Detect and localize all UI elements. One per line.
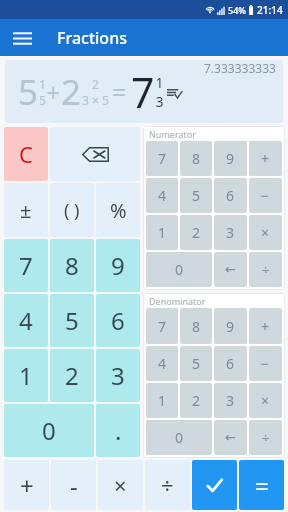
button[interactable]: 7.333333333 <box>5 60 283 123</box>
staticText: ( ) <box>64 198 80 223</box>
staticText: 8 <box>192 317 201 336</box>
button[interactable]: − <box>249 178 282 213</box>
staticText: 1 <box>19 359 33 392</box>
button[interactable]: 1 <box>4 349 48 402</box>
button[interactable]: 4 <box>146 346 178 381</box>
button[interactable]: 2 <box>50 349 94 402</box>
button[interactable]: 8 <box>180 308 212 344</box>
staticText: × <box>114 470 127 500</box>
button[interactable]: 1 <box>146 383 178 418</box>
button[interactable]: 7 <box>146 308 178 344</box>
staticText: Fractions <box>57 27 127 49</box>
button[interactable]: 3 <box>214 215 247 250</box>
staticText: 6 <box>226 186 235 205</box>
staticText: = <box>255 469 269 502</box>
button[interactable]: 3 <box>96 349 140 402</box>
button[interactable]: + <box>249 308 282 344</box>
staticText: + <box>46 75 61 109</box>
staticText: − <box>261 186 270 205</box>
staticText: 0 <box>175 428 184 447</box>
staticText: C <box>19 139 33 169</box>
button[interactable]: 0 <box>146 420 212 455</box>
staticText: 3 <box>155 92 164 111</box>
button[interactable]: 7 <box>146 141 178 176</box>
button[interactable]: 5 <box>180 346 212 381</box>
button[interactable]: ± <box>4 183 48 237</box>
staticText: Denominator <box>149 295 206 307</box>
staticText: 2 <box>192 223 201 242</box>
staticText: ÷ <box>262 261 270 279</box>
staticText: − <box>261 354 270 373</box>
button[interactable]: + <box>4 460 49 510</box>
button[interactable]: 8 <box>180 141 212 176</box>
button[interactable]: 2 <box>180 383 212 418</box>
button[interactable]: 9 <box>96 239 140 292</box>
button[interactable]: × <box>98 460 143 510</box>
staticText: + <box>261 317 270 336</box>
button[interactable]: 6 <box>214 178 247 213</box>
staticText: 5 <box>192 354 201 373</box>
button[interactable]: - <box>51 460 96 510</box>
button[interactable]: 6 <box>96 294 140 347</box>
staticText: ← <box>225 262 236 277</box>
button[interactable]: ← <box>214 420 247 455</box>
button[interactable]: . <box>96 404 140 457</box>
staticText: 7 <box>131 64 155 120</box>
staticText: . <box>115 414 122 447</box>
button[interactable]: 5 <box>50 294 94 347</box>
button[interactable]: C <box>4 127 48 181</box>
staticText: 2 <box>192 391 201 410</box>
staticText: 1 <box>158 391 167 410</box>
staticText: 9 <box>226 149 235 168</box>
staticText: 5 <box>39 92 46 108</box>
staticText: 4 <box>158 186 167 205</box>
staticText: 8 <box>65 249 79 282</box>
button[interactable]: Backspace <box>50 127 140 181</box>
button[interactable]: 0 <box>146 252 212 287</box>
staticText: 5 <box>18 68 39 116</box>
staticText: ← <box>225 430 236 445</box>
staticText: 7 <box>158 149 167 168</box>
button[interactable]: 2 <box>180 215 212 250</box>
staticText: 9 <box>226 317 235 336</box>
staticText: 5 <box>192 186 201 205</box>
button[interactable]: ÷ <box>145 460 190 510</box>
button[interactable]: Confirm <box>192 460 237 510</box>
button[interactable]: 3 <box>214 383 247 418</box>
button[interactable]: 5 <box>180 178 212 213</box>
button[interactable]: + <box>249 141 282 176</box>
staticText: = <box>112 75 127 109</box>
staticText: 7 <box>158 317 167 336</box>
button[interactable]: 1 <box>146 215 178 250</box>
button[interactable]: 9 <box>214 308 247 344</box>
button[interactable]: ← <box>214 252 247 287</box>
staticText: 2 <box>65 359 79 392</box>
button[interactable]: ( ) <box>50 183 94 237</box>
button[interactable]: = <box>239 460 284 510</box>
button[interactable]: 6 <box>214 346 247 381</box>
staticText: + <box>20 469 34 502</box>
button[interactable]: × <box>249 215 282 250</box>
staticText: 6 <box>226 354 235 373</box>
staticText: 0 <box>42 414 56 447</box>
staticText: 0 <box>175 260 184 279</box>
button[interactable]: ÷ <box>249 252 282 287</box>
button[interactable]: 8 <box>50 239 94 292</box>
staticText: 4 <box>158 354 167 373</box>
button[interactable]: × <box>249 383 282 418</box>
staticText: 5 <box>65 304 79 337</box>
button[interactable]: Menu <box>6 22 38 54</box>
button[interactable]: % <box>96 183 140 237</box>
button[interactable]: 0 <box>4 404 94 457</box>
button[interactable]: ÷ <box>249 420 282 455</box>
staticText: 21:14 <box>257 3 283 17</box>
button[interactable]: 9 <box>214 141 247 176</box>
staticText: 3 <box>111 359 125 392</box>
staticText: 3 <box>226 391 235 410</box>
button[interactable]: 7 <box>4 239 48 292</box>
button[interactable]: 4 <box>4 294 48 347</box>
button[interactable]: 4 <box>146 178 178 213</box>
staticText: - <box>70 469 78 502</box>
button[interactable]: − <box>249 346 282 381</box>
staticText: × <box>261 223 270 242</box>
